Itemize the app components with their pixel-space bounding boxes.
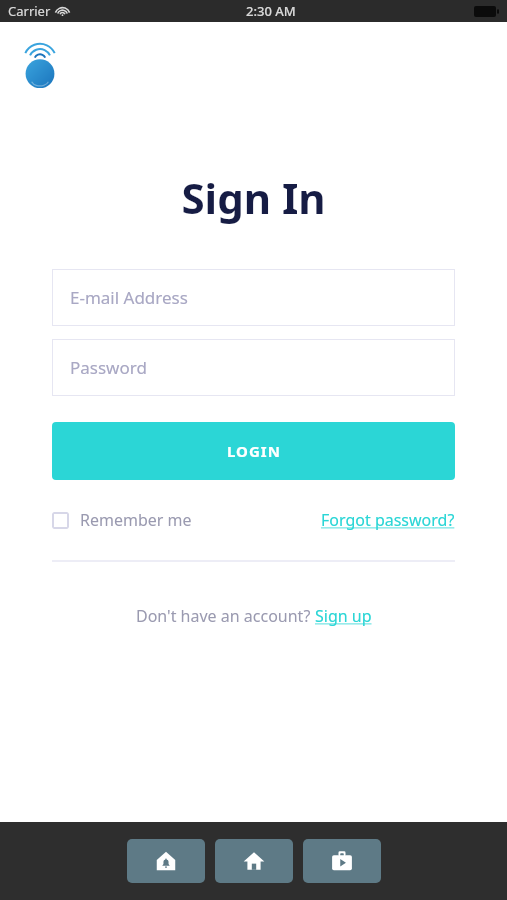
- staticText: Forgot password?: [321, 509, 455, 531]
- staticText: Sign up: [315, 605, 372, 627]
- button[interactable]: Remember me: [52, 509, 192, 531]
- staticText: E-mail Address: [70, 286, 188, 309]
- button[interactable]: Password: [52, 339, 455, 396]
- staticText: Carrier: [8, 2, 51, 20]
- button[interactable]: Sign up: [315, 605, 372, 627]
- staticText: 2:30 AM: [246, 2, 296, 20]
- staticText: Remember me: [80, 509, 192, 531]
- button[interactable]: E-mail Address: [52, 269, 455, 326]
- button[interactable]: Home: [215, 839, 293, 883]
- button[interactable]: LOGIN: [52, 422, 455, 480]
- button[interactable]: Forgot password?: [321, 509, 455, 531]
- button[interactable]: Recent apps: [303, 839, 381, 883]
- other: App logo: [22, 44, 58, 89]
- staticText: Password: [70, 356, 147, 379]
- staticText: Sign In: [0, 169, 507, 226]
- staticText: LOGIN: [227, 441, 281, 461]
- button[interactable]: Back: [127, 839, 205, 883]
- staticText: Don't have an account?: [136, 605, 315, 627]
